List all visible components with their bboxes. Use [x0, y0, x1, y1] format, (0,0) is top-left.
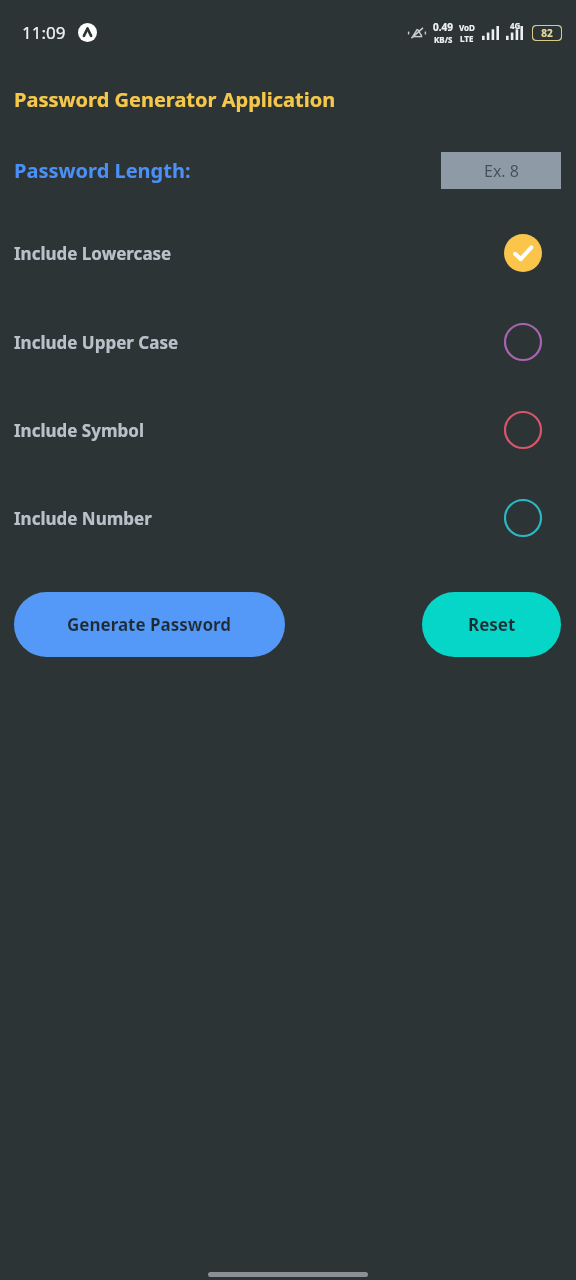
- staticText: Include Upper Case: [14, 331, 179, 354]
- other: Include Upper Case: [504, 323, 542, 361]
- staticText: Include Number: [14, 507, 152, 530]
- staticText: 11:09: [22, 21, 66, 44]
- other: Include Number: [504, 499, 542, 537]
- button[interactable]: Reset: [422, 592, 561, 657]
- staticText: Reset: [468, 613, 516, 636]
- button[interactable]: Ex. 8: [441, 152, 561, 189]
- button[interactable]: Include Number: [0, 483, 576, 553]
- staticText: LTE: [460, 33, 474, 44]
- staticText: 82: [541, 26, 553, 40]
- other: Include Symbol: [504, 411, 542, 449]
- staticText: Password Length:: [14, 157, 191, 184]
- staticText: VoD: [459, 22, 475, 33]
- button[interactable]: Include Upper Case: [0, 307, 576, 377]
- button[interactable]: Include Symbol: [0, 395, 576, 465]
- staticText: Ex. 8: [484, 160, 519, 182]
- staticText: Password Generator Application: [14, 86, 336, 113]
- button[interactable]: Include Lowercase: [0, 218, 576, 288]
- staticText: Include Symbol: [14, 419, 144, 442]
- staticText: 0.49: [433, 20, 453, 34]
- button[interactable]: Generate Password: [14, 592, 285, 657]
- staticText: 4G: [510, 20, 521, 31]
- staticText: KB/S: [434, 34, 453, 45]
- staticText: Include Lowercase: [14, 242, 172, 265]
- other: Include Lowercase: [504, 234, 542, 272]
- staticText: Generate Password: [67, 613, 232, 636]
